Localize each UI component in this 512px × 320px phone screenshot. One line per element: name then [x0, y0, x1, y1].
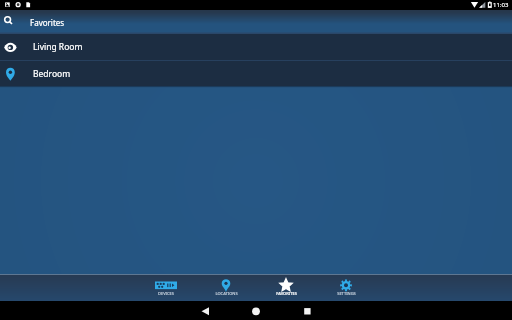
- staticText: 11:03: [493, 1, 509, 9]
- staticText: Living Room: [33, 41, 83, 53]
- staticText: SETTINGS: [337, 291, 356, 296]
- staticText: Bedroom: [33, 68, 71, 80]
- button[interactable]: Bedroom: [0, 60, 512, 86]
- staticText: DEVICES: [158, 291, 174, 296]
- button[interactable]: LOCATIONS: [196, 275, 256, 301]
- staticText: FAVORITES: [276, 291, 297, 296]
- button[interactable]: Living Room: [0, 34, 512, 60]
- button[interactable]: DEVICES: [136, 275, 196, 301]
- staticText: Favorites: [30, 17, 65, 28]
- staticText: LOCATIONS: [215, 291, 238, 296]
- button[interactable]: SETTINGS: [316, 275, 376, 301]
- button[interactable]: Search: [0, 10, 30, 34]
- button[interactable]: FAVORITES: [256, 275, 316, 301]
